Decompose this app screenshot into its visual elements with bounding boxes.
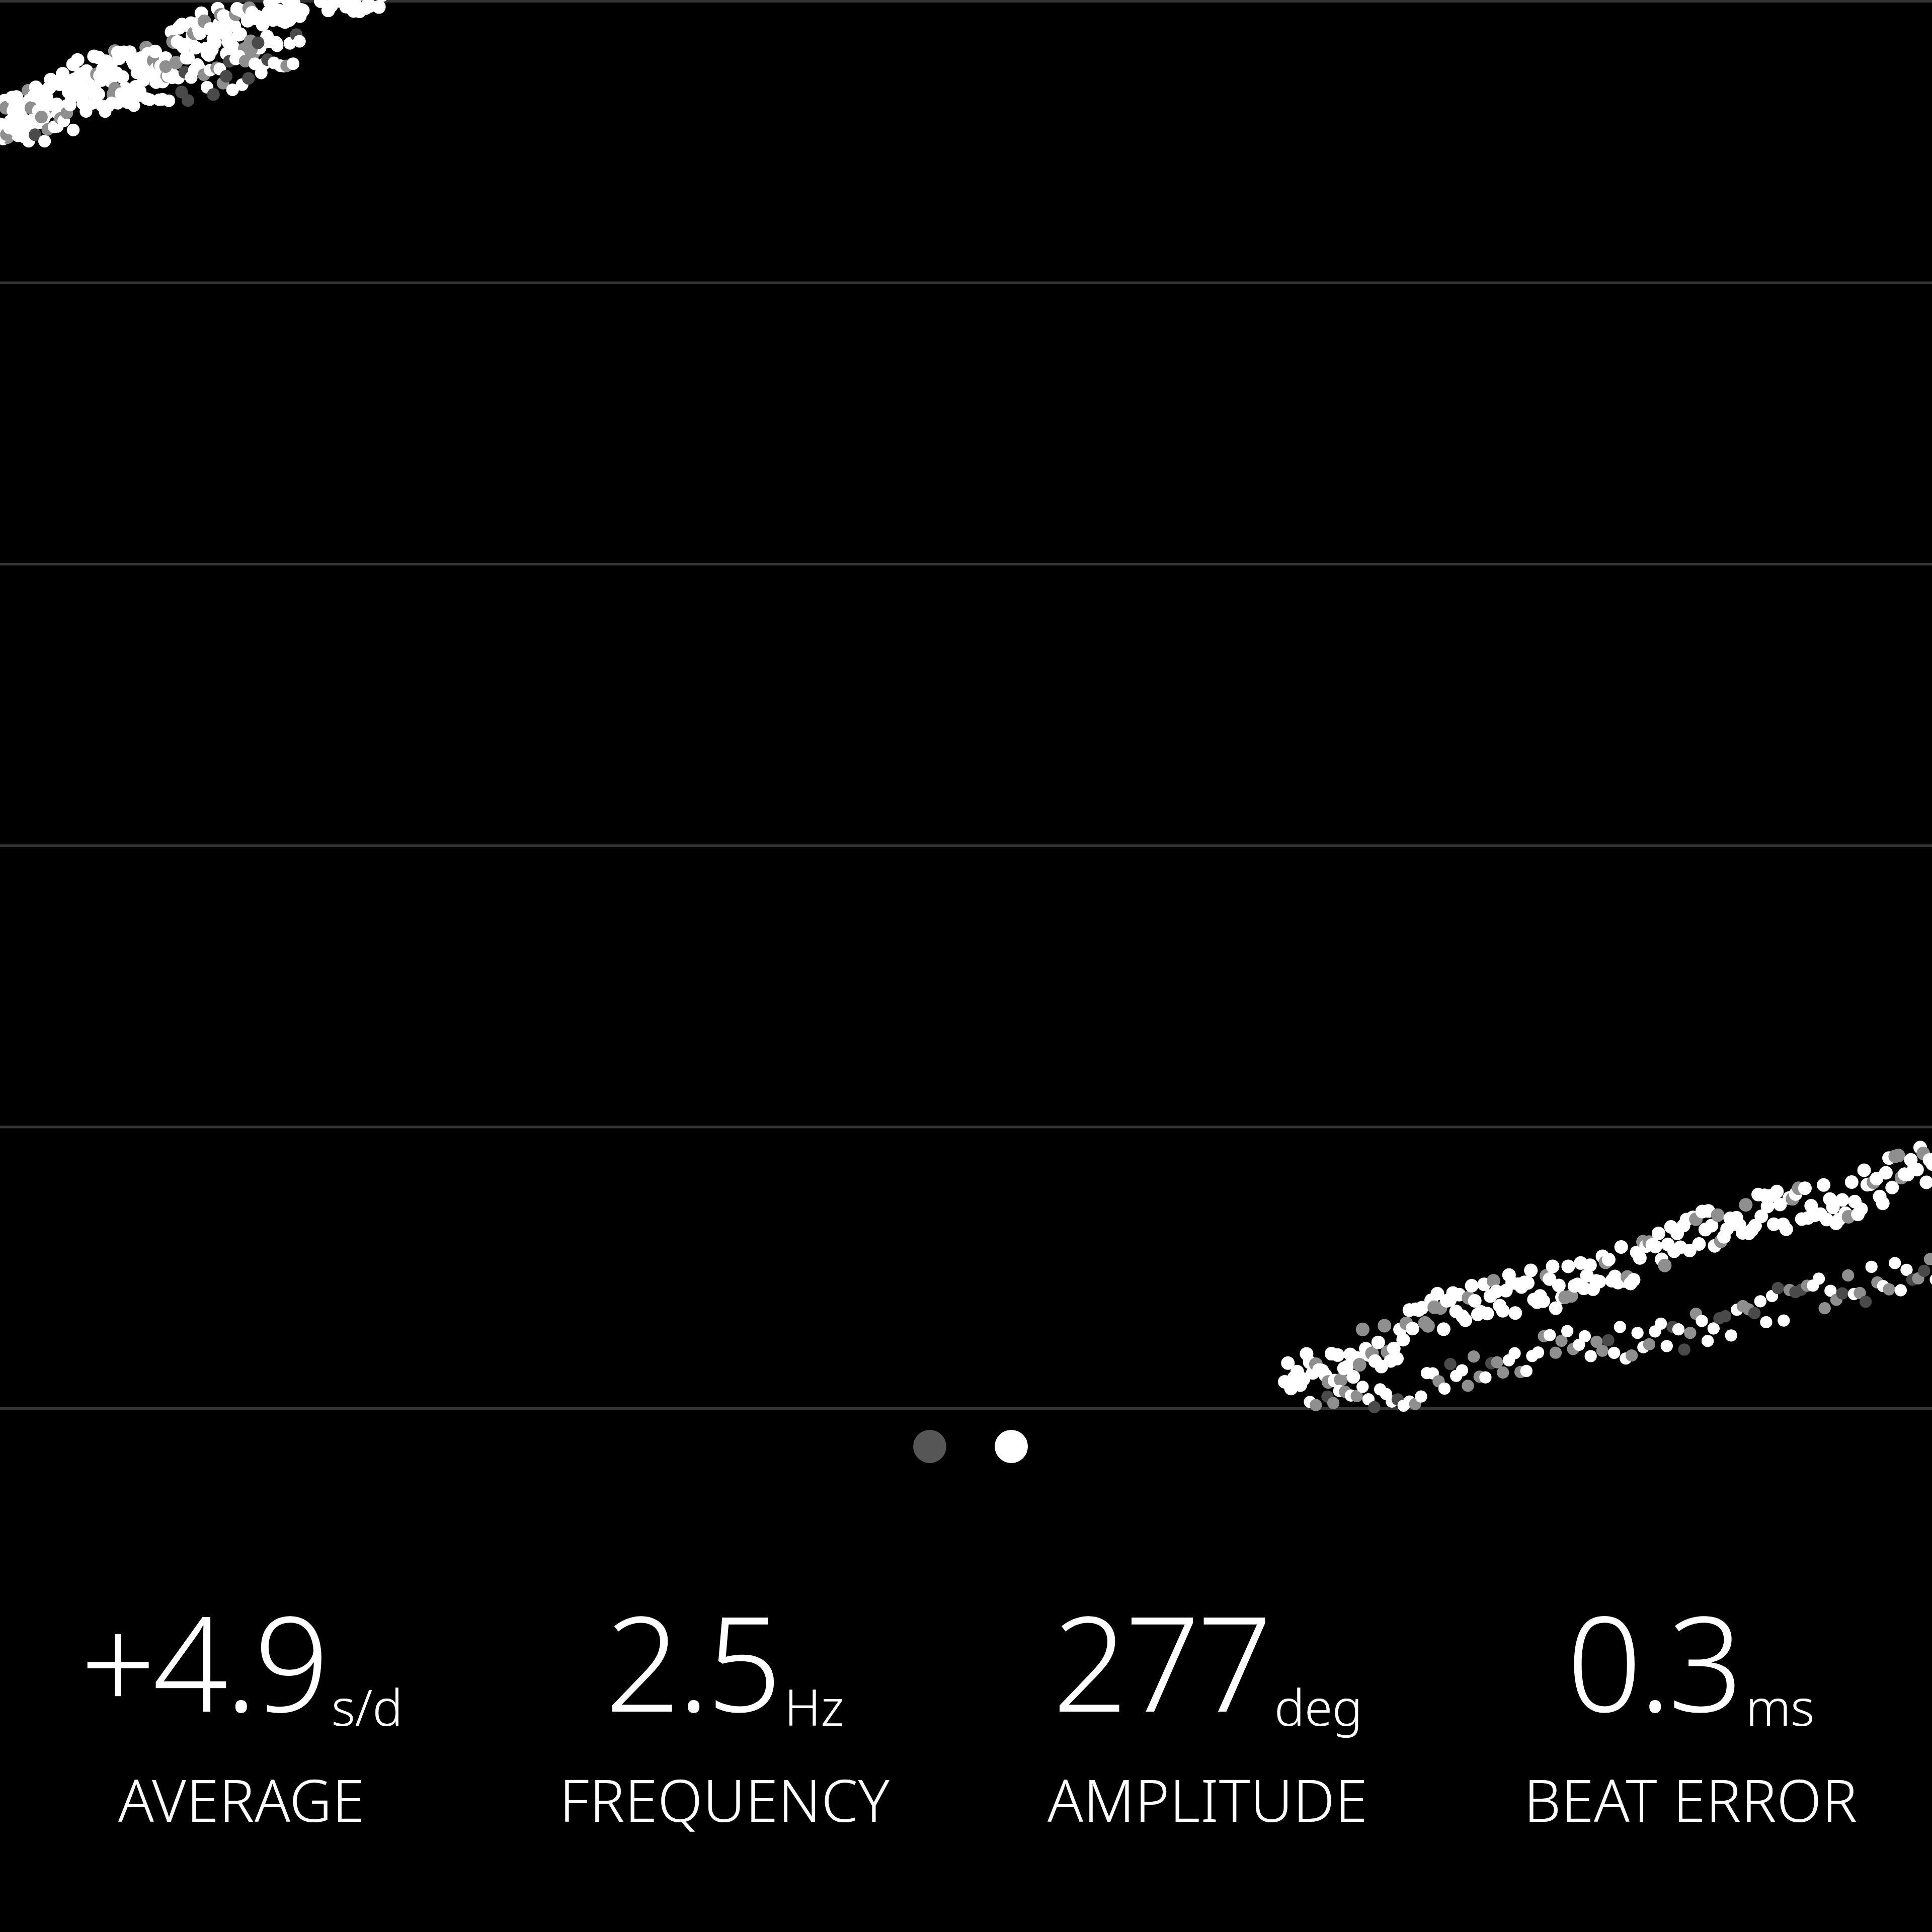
button[interactable]: Timegrapher rate trace graph bbox=[0, 0, 1932, 1410]
staticText: ms bbox=[1746, 1672, 1815, 1740]
staticText: FREQUENCY bbox=[559, 1759, 890, 1839]
staticText: AMPLITUDE bbox=[1048, 1759, 1368, 1839]
staticText: BEAT ERROR bbox=[1524, 1759, 1858, 1839]
staticText: deg bbox=[1274, 1672, 1362, 1740]
staticText: AVERAGE bbox=[118, 1759, 365, 1839]
staticText: Hz bbox=[784, 1672, 844, 1740]
button[interactable]: 0.3 bbox=[1449, 1571, 1932, 1839]
staticText: 0.3 bbox=[1567, 1571, 1741, 1750]
button[interactable]: 2.5 bbox=[483, 1571, 966, 1839]
staticText: +4.9 bbox=[80, 1571, 327, 1750]
button[interactable]: Page 2 of 2 bbox=[913, 1430, 1028, 1463]
staticText: 277 bbox=[1053, 1571, 1269, 1750]
button[interactable]: +4.9 bbox=[0, 1571, 483, 1839]
staticText: 2.5 bbox=[605, 1571, 779, 1750]
staticText: s/d bbox=[332, 1672, 403, 1740]
button[interactable]: 277 bbox=[966, 1571, 1449, 1839]
